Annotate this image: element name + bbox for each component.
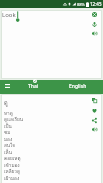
button[interactable]: Share (89, 115, 100, 125)
staticText: เห็น (4, 149, 12, 156)
button[interactable]: Speak (89, 28, 100, 38)
staticText: Look (2, 11, 16, 19)
staticText: เหลียวดู (4, 168, 20, 175)
staticText: ดู (4, 99, 8, 108)
staticText: English (69, 83, 87, 90)
button[interactable]: Copy (89, 95, 100, 105)
staticText: เป็น (4, 123, 12, 130)
staticText: สนใจ (4, 142, 16, 149)
button[interactable]: Voice input (89, 19, 100, 29)
button[interactable]: Thai (16, 80, 49, 94)
button[interactable]: Menu (0, 80, 16, 94)
staticText: ดูแลเรียน (4, 116, 24, 123)
staticText: เข้ามอง (4, 162, 20, 169)
staticText: Thai (28, 83, 39, 90)
button[interactable]: English (49, 80, 103, 94)
staticText: คอยเหตุ (4, 155, 21, 162)
staticText: 12:45 (90, 1, 102, 7)
staticText: เฝ้ามอง (4, 175, 20, 182)
staticText: ชม (4, 129, 11, 136)
staticText: 88% (77, 2, 85, 7)
button[interactable]: Clear (89, 9, 100, 19)
button[interactable]: Favorite (89, 105, 100, 115)
button[interactable]: Speak (89, 124, 100, 134)
staticText: มอง (4, 136, 13, 143)
staticText: หาดู (4, 110, 13, 117)
